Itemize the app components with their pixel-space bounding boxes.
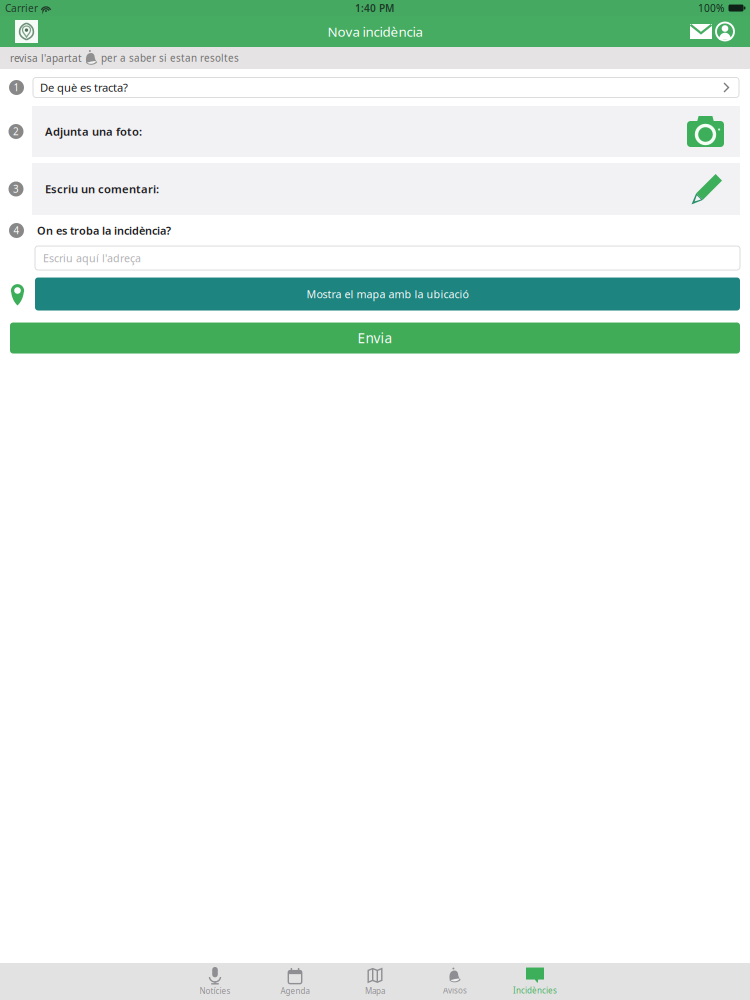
button[interactable]: Incidències [495,963,575,1000]
staticText: 4 [13,224,19,237]
staticText: 3 [13,182,19,196]
staticText: 1:40 PM [355,1,394,15]
staticText: Incidències [513,985,557,996]
staticText: Mapa [365,986,385,996]
staticText: 2 [13,125,19,138]
button[interactable]: Avisos [415,963,495,1000]
button[interactable]: Missatges [688,19,714,43]
button[interactable]: Notícies [175,963,255,1000]
staticText: per a saber si estan resoltes [101,51,239,65]
staticText: Escriu un comentari: [45,181,159,197]
staticText: Adjunta una foto: [45,124,142,139]
staticText: De què es tracta? [40,80,128,95]
button[interactable]: Agenda [255,963,335,1000]
button[interactable]: Inici [15,20,38,43]
staticText: Agenda [280,986,309,996]
staticText: Avisos [443,985,467,996]
button[interactable]: 2 [0,106,750,157]
button[interactable]: Compte [714,19,736,43]
staticText: Carrier [5,1,38,15]
staticText: Notícies [199,986,230,996]
button[interactable]: Envia [10,322,740,353]
button[interactable]: 3 [0,163,750,215]
staticText: Nova incidència [327,22,422,41]
staticText: 1 [13,81,19,94]
staticText: 100% [698,1,724,15]
staticText: Mostra el mapa amb la ubicació [306,287,468,301]
button[interactable]: Mapa [335,963,415,1000]
staticText: Escriu aquí l'adreça [43,251,141,265]
staticText: On es troba la incidència? [37,223,171,238]
staticText: revisa l'apartat [10,51,82,65]
button[interactable]: 1 [0,69,750,106]
staticText: Envia [357,329,392,347]
button[interactable]: Mostra el mapa amb la ubicació [35,277,740,310]
